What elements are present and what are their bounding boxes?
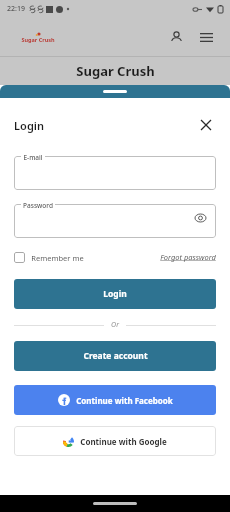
button[interactable]: Menu — [194, 25, 218, 49]
staticText: Remember me — [31, 253, 84, 263]
staticText: Or — [111, 320, 119, 330]
staticText: Password — [23, 201, 53, 208]
button[interactable]: Forgot password — [160, 252, 216, 262]
button[interactable]: Create account — [14, 341, 216, 371]
staticText: Sugar Crush — [21, 36, 55, 43]
staticText: E-mail — [23, 153, 43, 160]
staticText: Sugar Crush — [76, 62, 155, 80]
button[interactable]: Continue with Facebook — [14, 385, 216, 415]
staticText: Forgot password — [160, 252, 216, 262]
staticText: Login — [14, 118, 44, 133]
staticText: Create account — [83, 350, 148, 362]
staticText: Continue with Facebook — [76, 395, 173, 406]
button[interactable]: Account — [164, 25, 188, 49]
button[interactable]: Remember me — [14, 252, 84, 263]
button[interactable] — [14, 156, 216, 190]
button[interactable]: Continue with Google — [14, 426, 216, 456]
button[interactable]: Close — [196, 115, 216, 135]
button[interactable] — [14, 204, 216, 238]
button[interactable]: Login — [14, 279, 216, 309]
staticText: Continue with Google — [80, 436, 167, 447]
staticText: 22:19 — [7, 4, 25, 14]
staticText: Login — [103, 288, 127, 300]
button[interactable]: Show password — [192, 210, 208, 226]
